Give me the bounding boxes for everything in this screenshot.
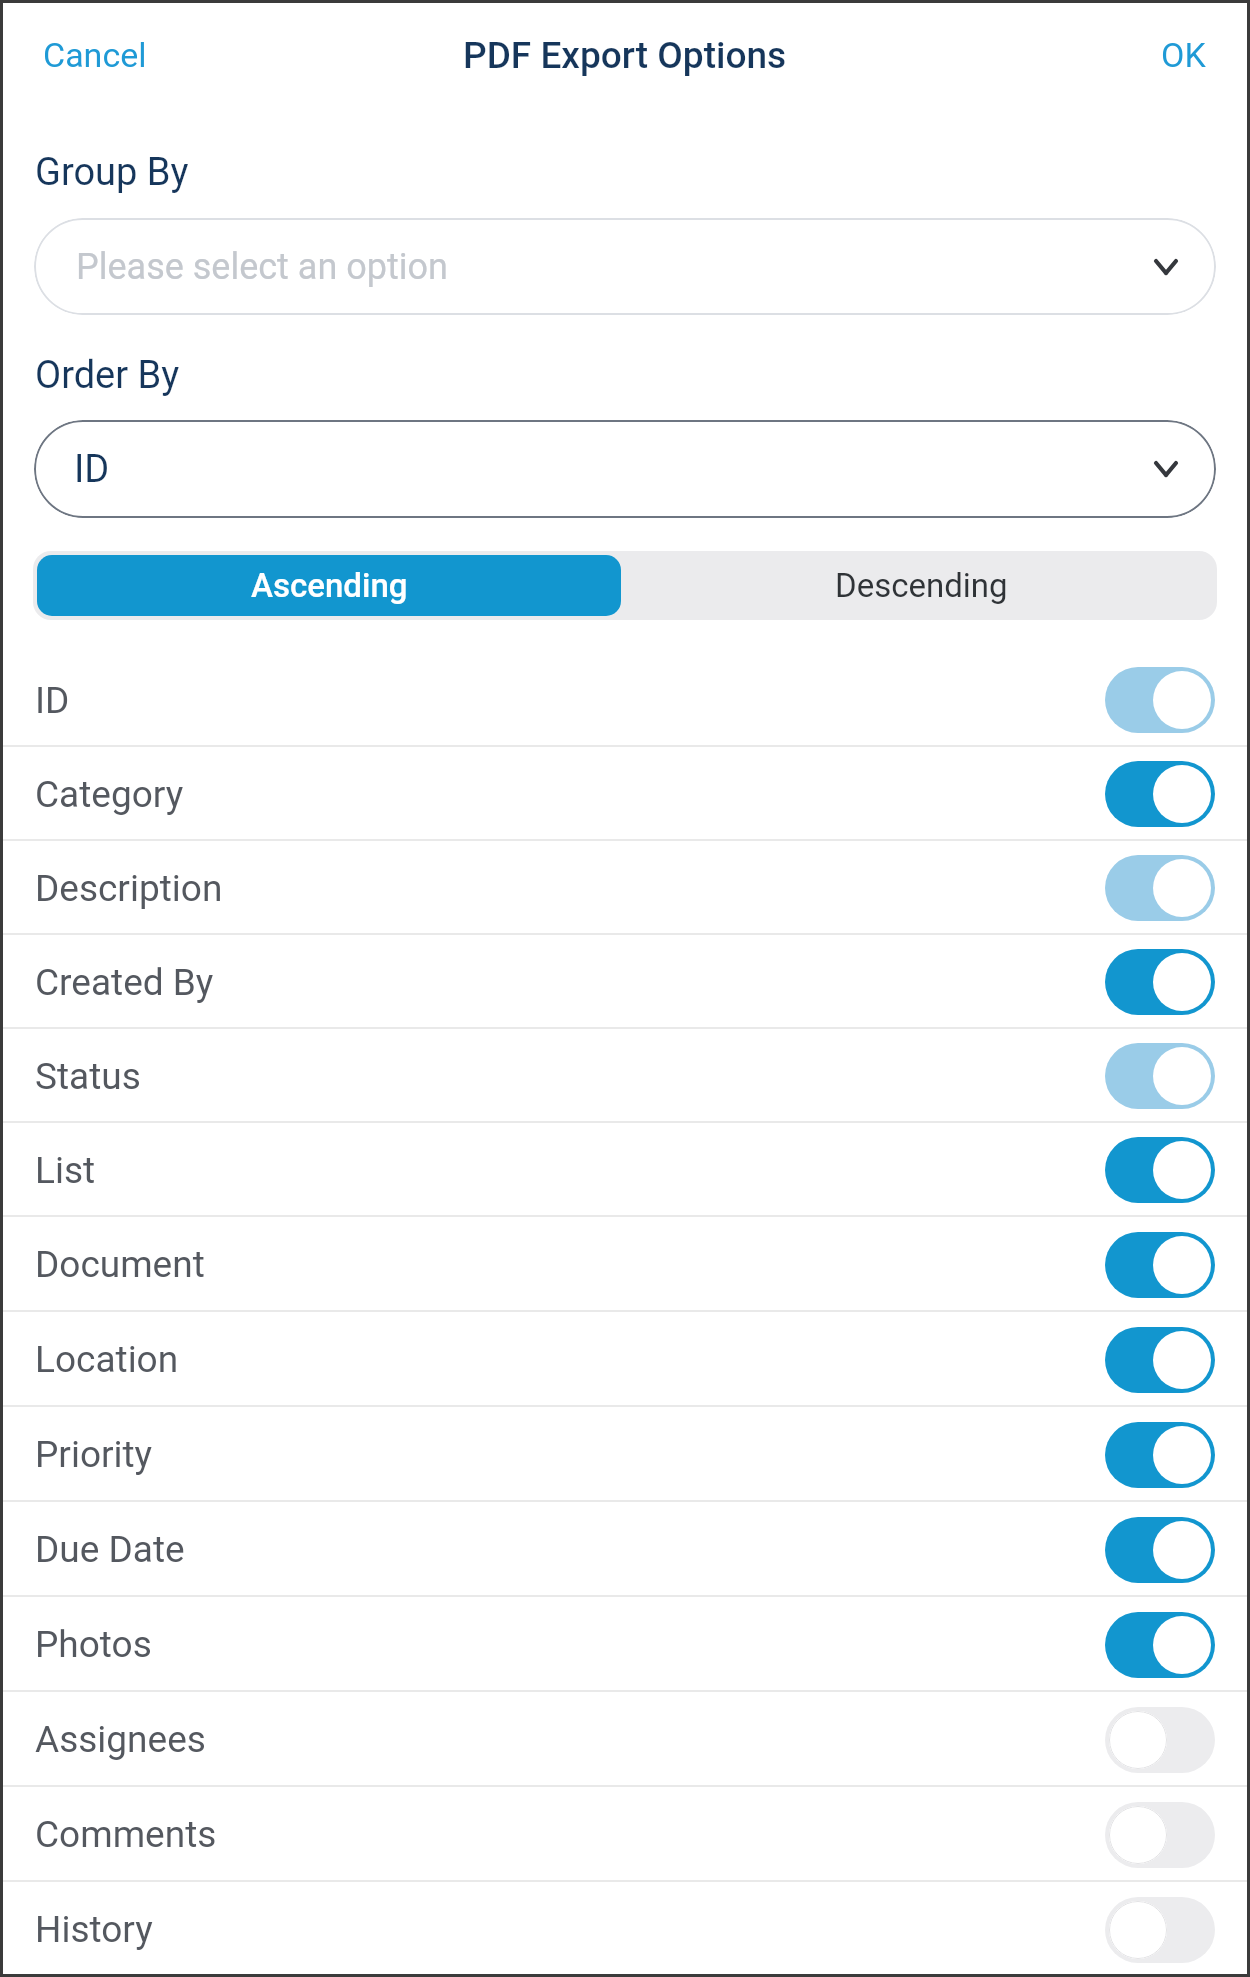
button[interactable]: History [0,1882,1250,1977]
button[interactable]: Ascending [37,555,621,616]
button[interactable]: Location [0,1312,1250,1407]
button[interactable]: Due Date [0,1502,1250,1597]
button[interactable]: Please select an option [34,218,1216,315]
button[interactable] [1105,1327,1215,1393]
button[interactable] [1105,1707,1215,1773]
button[interactable]: Photos [0,1597,1250,1692]
button[interactable] [1105,761,1215,827]
staticText: Ascending [251,566,408,605]
button[interactable] [1105,949,1215,1015]
staticText: ID [35,679,70,722]
staticText: Photos [35,1623,152,1666]
button[interactable] [1105,1517,1215,1583]
staticText: Description [35,867,223,910]
staticText: Created By [35,961,214,1004]
button[interactable]: ID [0,653,1250,747]
staticText: Comments [35,1813,217,1856]
button[interactable] [1105,1422,1215,1488]
button[interactable]: Status [0,1029,1250,1123]
button[interactable] [1105,1802,1215,1868]
staticText: Order By [35,353,180,398]
staticText: ID [74,447,110,492]
staticText: Cancel [43,35,147,75]
button[interactable]: Priority [0,1407,1250,1502]
button[interactable]: Comments [0,1787,1250,1882]
button[interactable]: Assignees [0,1692,1250,1787]
button[interactable]: OK [1161,35,1206,75]
staticText: Assignees [35,1718,206,1761]
button[interactable]: List [0,1123,1250,1217]
button[interactable] [1105,1232,1215,1298]
button[interactable]: ID [34,420,1216,518]
button[interactable]: Category [0,747,1250,841]
button[interactable] [1105,1043,1215,1109]
staticText: Location [35,1338,179,1381]
staticText: Status [35,1055,141,1098]
staticText: OK [1161,35,1206,75]
staticText: Category [35,773,184,816]
staticText: Descending [835,566,1008,605]
staticText: List [35,1149,96,1192]
staticText: PDF Export Options [463,34,787,77]
staticText: Due Date [35,1528,185,1571]
button[interactable] [1105,1137,1215,1203]
staticText: Please select an option [76,246,448,288]
staticText: Document [35,1243,205,1286]
button[interactable]: Descending [625,551,1217,620]
staticText: History [35,1908,153,1951]
button[interactable] [1105,855,1215,921]
staticText: Group By [35,150,189,195]
staticText: Priority [35,1433,153,1476]
button[interactable]: Description [0,841,1250,935]
button[interactable]: Cancel [43,35,147,75]
button[interactable]: Created By [0,935,1250,1029]
button[interactable] [1105,1612,1215,1678]
button[interactable]: Document [0,1217,1250,1312]
button[interactable] [1105,1897,1215,1963]
button[interactable] [1105,667,1215,733]
